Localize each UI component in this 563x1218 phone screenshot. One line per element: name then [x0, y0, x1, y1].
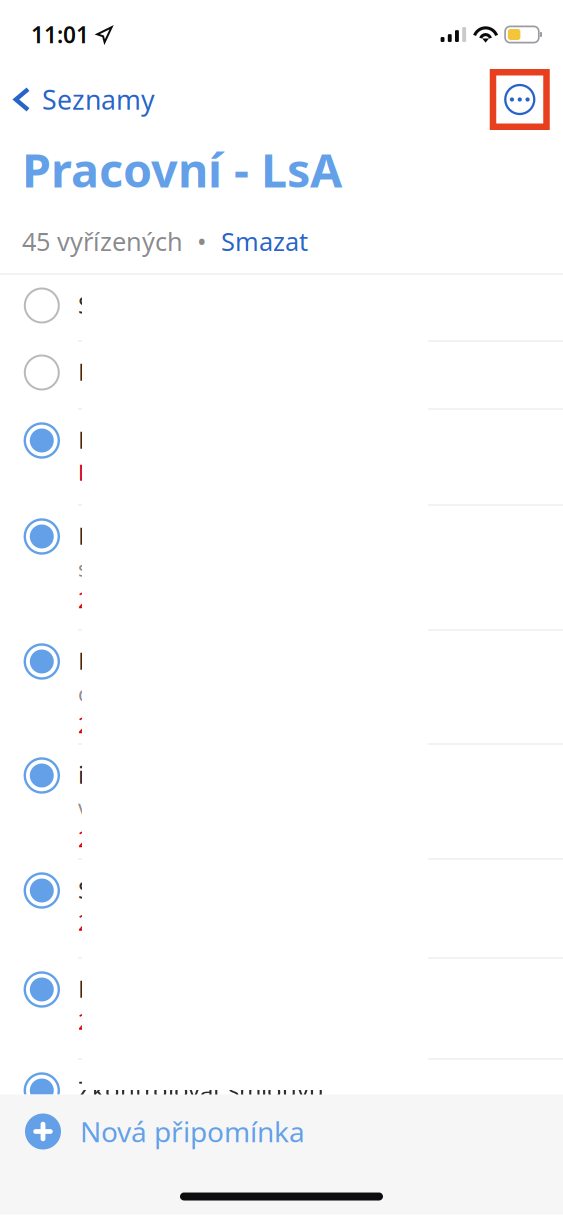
staticText: Seznamy — [42, 82, 155, 117]
staticText: včetně příloh — [78, 793, 210, 822]
button[interactable]: More — [493, 72, 563, 127]
staticText: Pracovní - LsA — [22, 138, 342, 200]
staticText: Poslat podklady — [78, 355, 257, 387]
staticText: od dodavatele — [78, 679, 222, 708]
staticText: • — [183, 224, 221, 258]
staticText: 24. 5. 2024 — [78, 711, 186, 739]
staticText: Nahlásit změny — [78, 519, 249, 551]
button[interactable]: Nahlásit změny — [0, 505, 563, 630]
button[interactable]: Seznamy — [0, 74, 155, 125]
button[interactable]: Smazat — [221, 224, 308, 258]
button[interactable]: Připravit prezentaci — [0, 409, 563, 505]
staticText: Připravit prezentaci — [78, 423, 296, 455]
button[interactable]: inventura skladu — [0, 744, 563, 859]
staticText: Schůzka s klientem — [78, 873, 292, 905]
staticText: 45 vyřízených — [22, 224, 183, 258]
staticText: 11:01 — [31, 19, 89, 49]
staticText: inventura skladu — [78, 758, 265, 790]
button[interactable]: Zkontrolovat smlouvu — [0, 1059, 563, 1119]
staticText: Projít objednávky — [78, 644, 274, 676]
staticText: servisní zásah — [78, 554, 218, 583]
staticText: Sestavit rozpočet — [78, 288, 270, 320]
staticText: 26. 5. 2024 — [78, 586, 186, 614]
button[interactable]: Nová připomínka — [0, 1094, 563, 1168]
staticText: 20. 5. 2024 — [78, 1007, 186, 1036]
staticText: Dnes 9:00 — [78, 458, 177, 487]
staticText: Poslat fakturu — [78, 972, 236, 1004]
staticText: Nová připomínka — [80, 1113, 305, 1150]
staticText: 21. 5. 2024 — [78, 908, 186, 937]
button[interactable]: Poslat fakturu — [0, 958, 563, 1059]
button[interactable]: Sestavit rozpočet — [0, 274, 563, 341]
staticText: Zkontrolovat smlouvu — [78, 1073, 324, 1105]
button[interactable]: Poslat podklady — [0, 341, 563, 409]
button[interactable]: Projít objednávky — [0, 630, 563, 744]
staticText: Smazat — [221, 224, 308, 258]
staticText: 22. 5. 2024 — [78, 825, 186, 853]
button[interactable]: Schůzka s klientem — [0, 859, 563, 958]
